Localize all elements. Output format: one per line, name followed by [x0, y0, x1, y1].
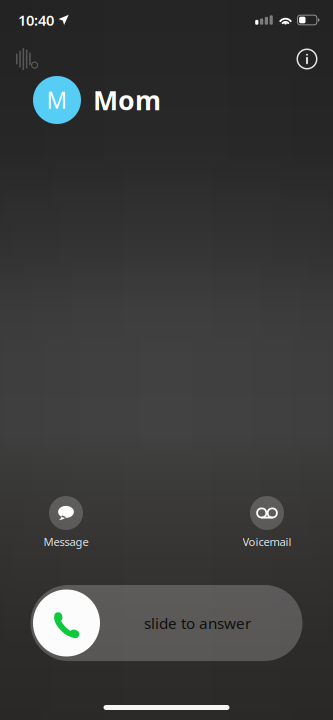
- staticText: 10:40: [18, 10, 54, 30]
- button[interactable]: Call details: [285, 44, 329, 74]
- staticText: Message: [43, 534, 88, 549]
- button[interactable]: Message: [14, 496, 118, 546]
- staticText: slide to answer: [144, 613, 251, 633]
- staticText: M: [46, 85, 67, 115]
- staticText: Voicemail: [242, 534, 291, 549]
- button[interactable]: Voicemail: [215, 496, 319, 546]
- button[interactable]: Slide to answer: [30, 585, 302, 661]
- staticText: Mom: [93, 82, 161, 118]
